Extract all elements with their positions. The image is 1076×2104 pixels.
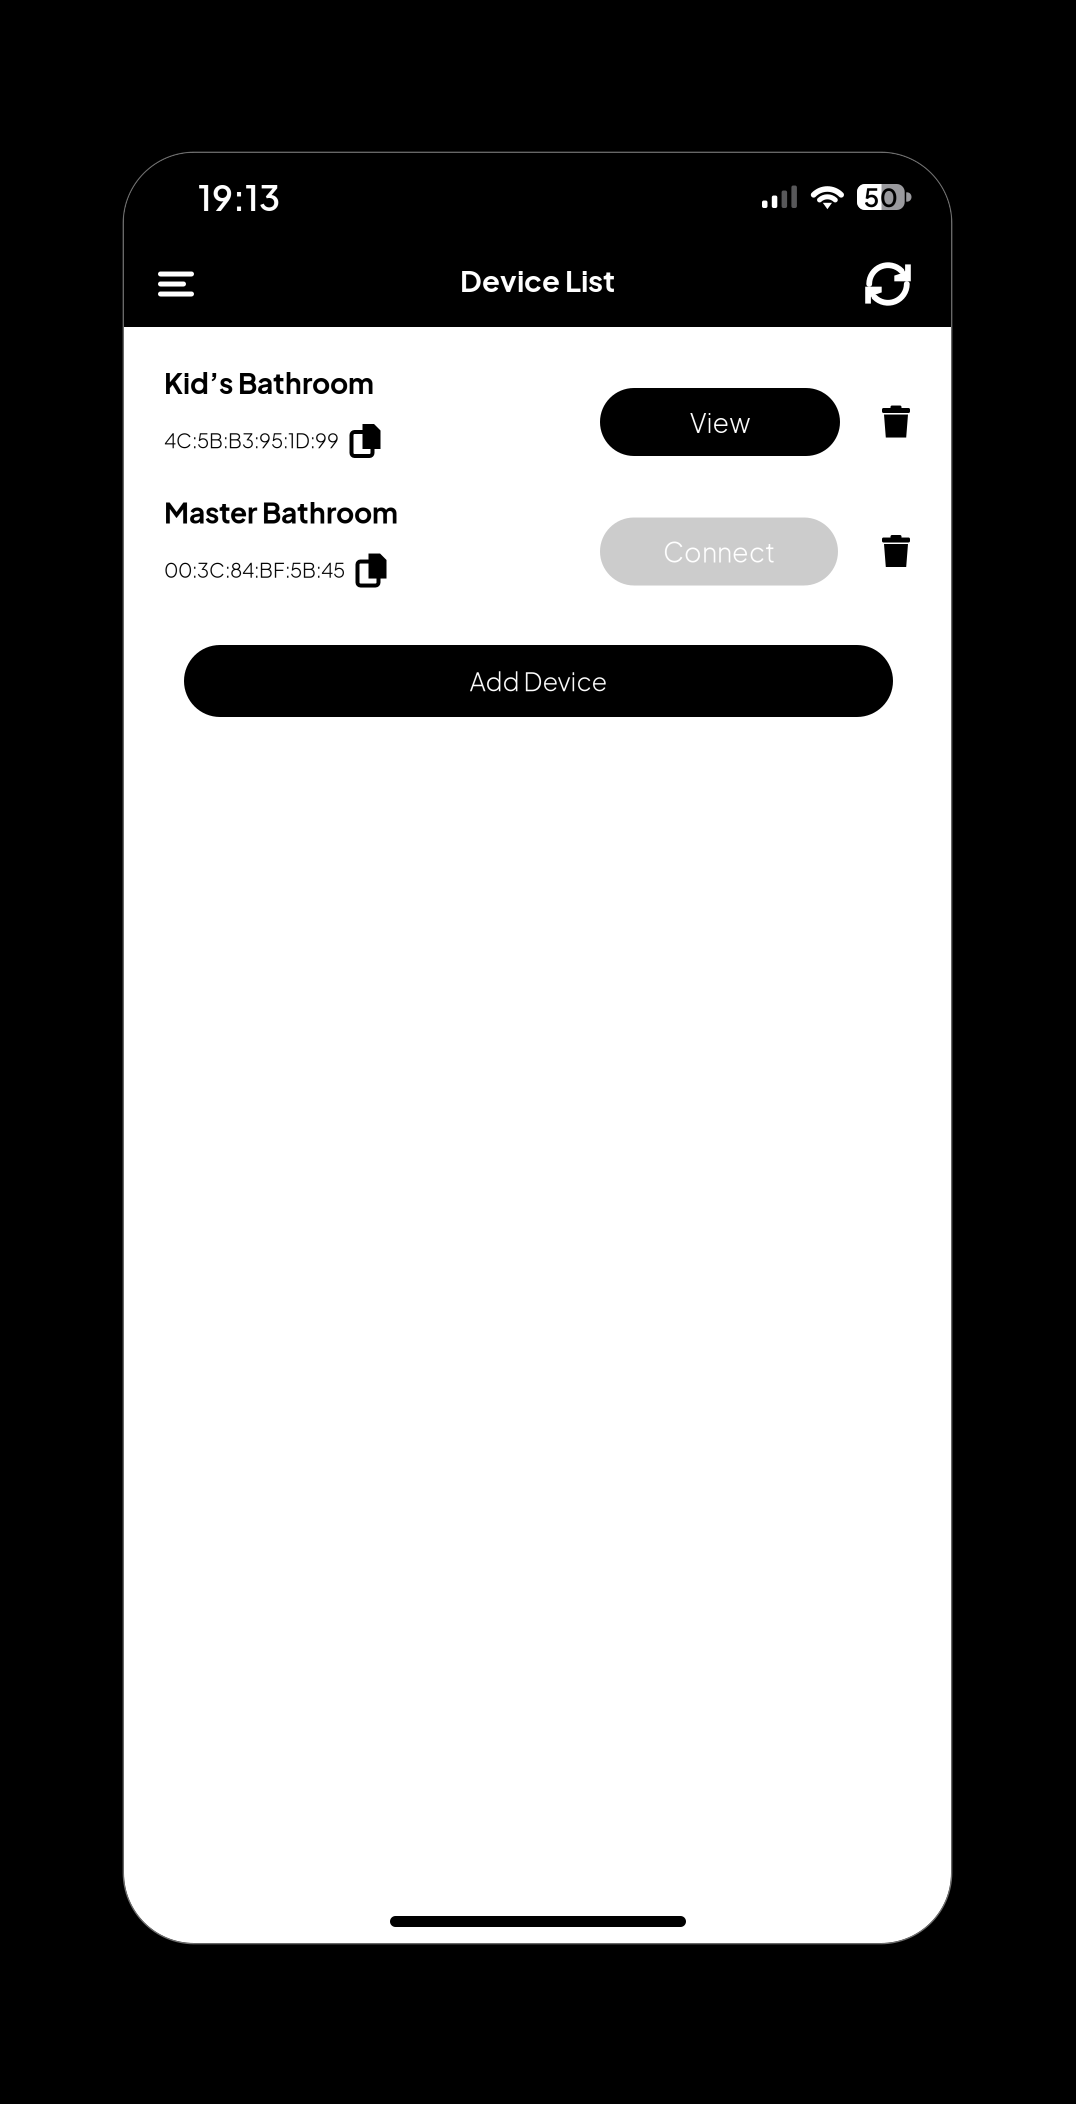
staticText: 50 bbox=[864, 181, 898, 213]
button[interactable]: Menu bbox=[141, 253, 211, 315]
button[interactable]: Refresh bbox=[857, 253, 919, 315]
button[interactable]: View bbox=[600, 388, 840, 456]
staticText: Connect bbox=[663, 535, 775, 568]
staticText: 00:3C:84:BF:5B:45 bbox=[164, 557, 345, 582]
staticText: 19:13 bbox=[198, 175, 280, 219]
button[interactable]: Delete Kid’s Bathroom bbox=[868, 394, 924, 450]
staticText: 4C:5B:B3:95:1D:99 bbox=[164, 427, 339, 453]
button[interactable]: Connect bbox=[600, 517, 838, 585]
button[interactable]: Delete Master Bathroom bbox=[868, 523, 924, 579]
staticText: Device List bbox=[460, 261, 615, 298]
button[interactable]: Add Device bbox=[184, 645, 893, 717]
staticText: Add Device bbox=[469, 665, 607, 697]
button[interactable]: Copy MAC address bbox=[339, 418, 383, 462]
staticText: Master Bathroom bbox=[164, 494, 398, 530]
button[interactable]: Copy MAC address bbox=[345, 547, 389, 591]
staticText: Kid’s Bathroom bbox=[164, 365, 374, 400]
staticText: View bbox=[689, 405, 750, 439]
